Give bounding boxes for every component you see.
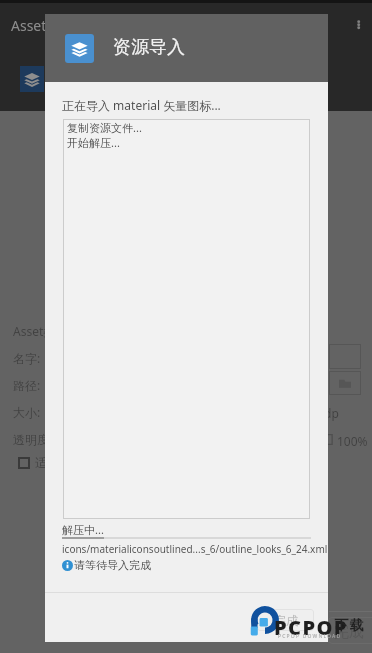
staticText: dp: [324, 405, 339, 421]
staticText: Asset Studio: [11, 16, 93, 35]
button[interactable]: 适配: [18, 455, 59, 470]
staticText: 资源导入: [113, 36, 185, 59]
staticText: 透明度:: [13, 431, 53, 447]
staticText: 大小:: [13, 404, 41, 420]
button[interactable]: More options: [348, 13, 370, 37]
staticText: Asset类型:: [13, 323, 71, 339]
staticText: 路径:: [13, 377, 41, 393]
staticText: 正在导入 material 矢量图标...: [62, 97, 221, 113]
staticText: 复制资源文件...: [67, 120, 142, 135]
staticText: 下载: [334, 617, 364, 635]
staticText: icons/materialiconsoutlined...s_6/outlin…: [62, 542, 328, 556]
button[interactable]: 完成: [257, 609, 314, 631]
button[interactable]: Layers: [20, 66, 44, 92]
button[interactable]: Browse folder: [329, 371, 361, 395]
staticText: 解压中...: [62, 522, 104, 537]
staticText: 适配: [35, 455, 59, 470]
staticText: 名字:: [13, 350, 41, 366]
staticText: 请等待导入完成: [74, 558, 151, 572]
staticText: 开始解压...: [67, 135, 120, 150]
staticText: 100%: [337, 433, 368, 449]
staticText: PCPOP: [274, 614, 348, 641]
staticText: PCPOP DOWNLOAD: [278, 633, 342, 640]
staticText: 完成: [274, 613, 298, 628]
staticText: 完成: [334, 623, 364, 642]
button[interactable]: 完成: [328, 617, 372, 644]
